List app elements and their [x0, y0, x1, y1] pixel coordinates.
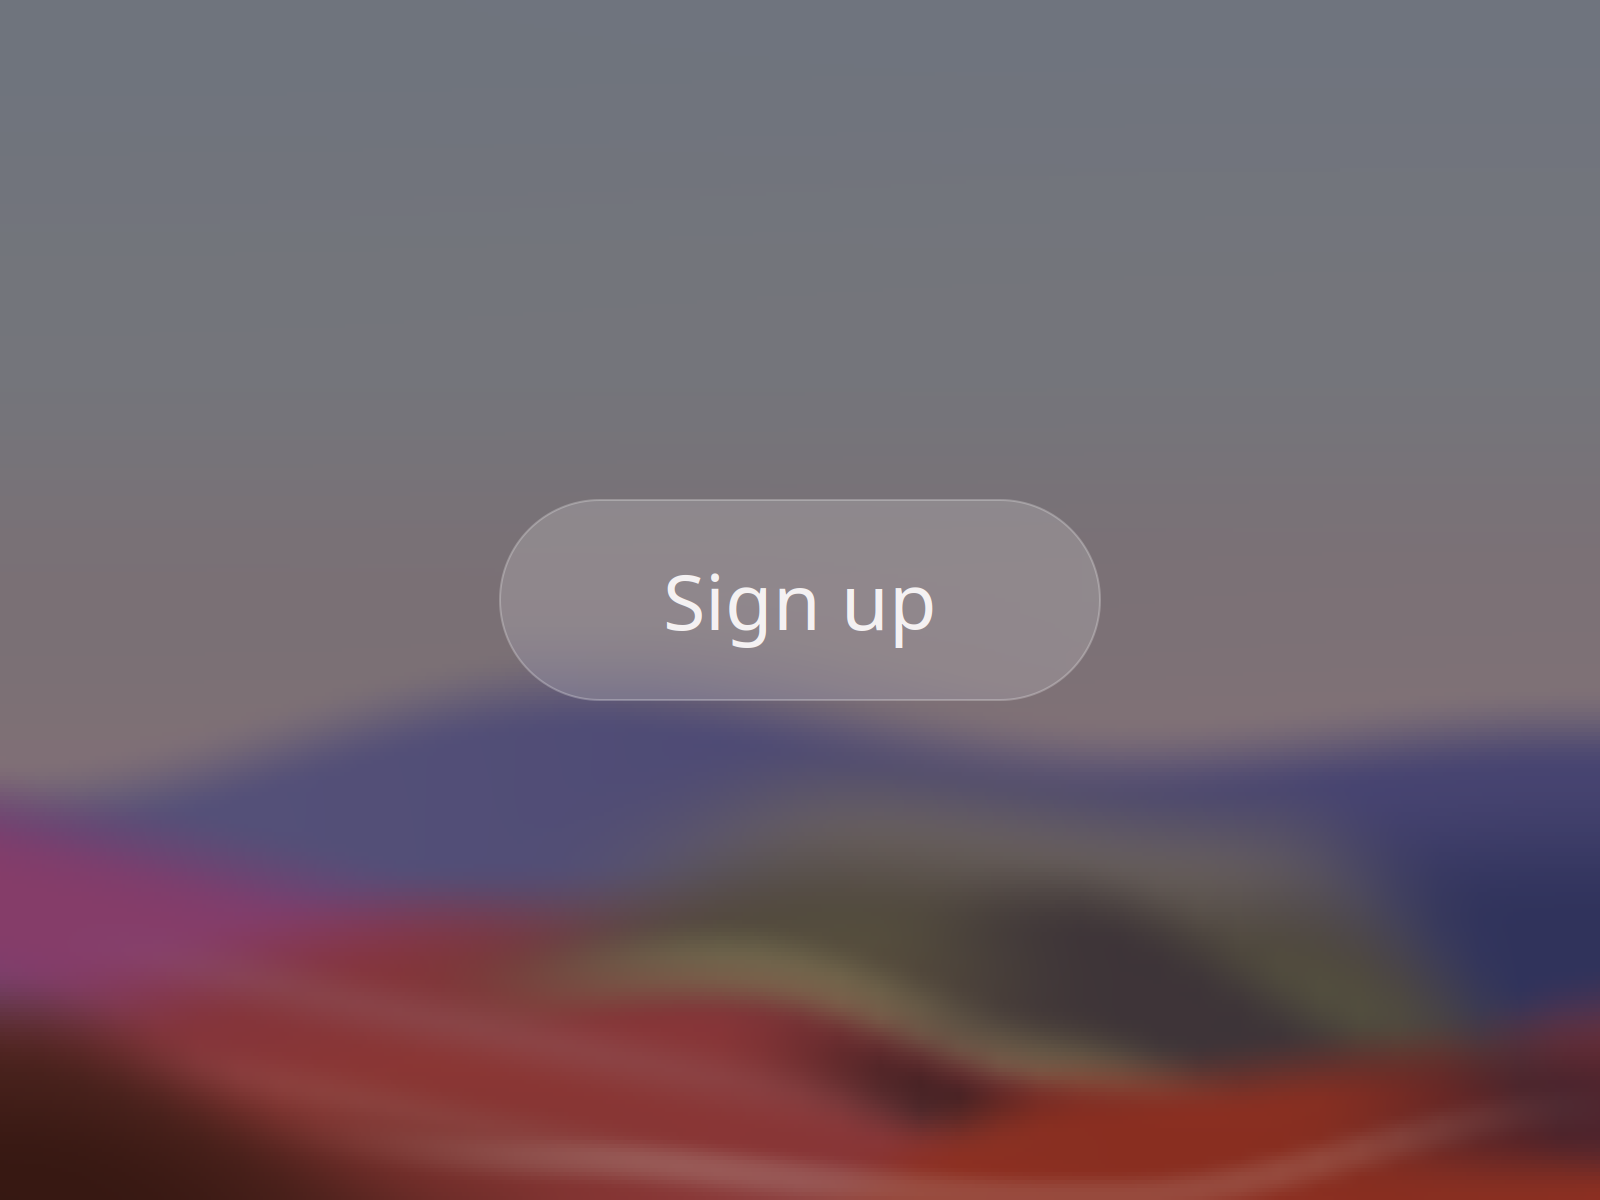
- staticText: Sign up: [663, 549, 937, 651]
- button[interactable]: Sign up: [500, 500, 1100, 700]
